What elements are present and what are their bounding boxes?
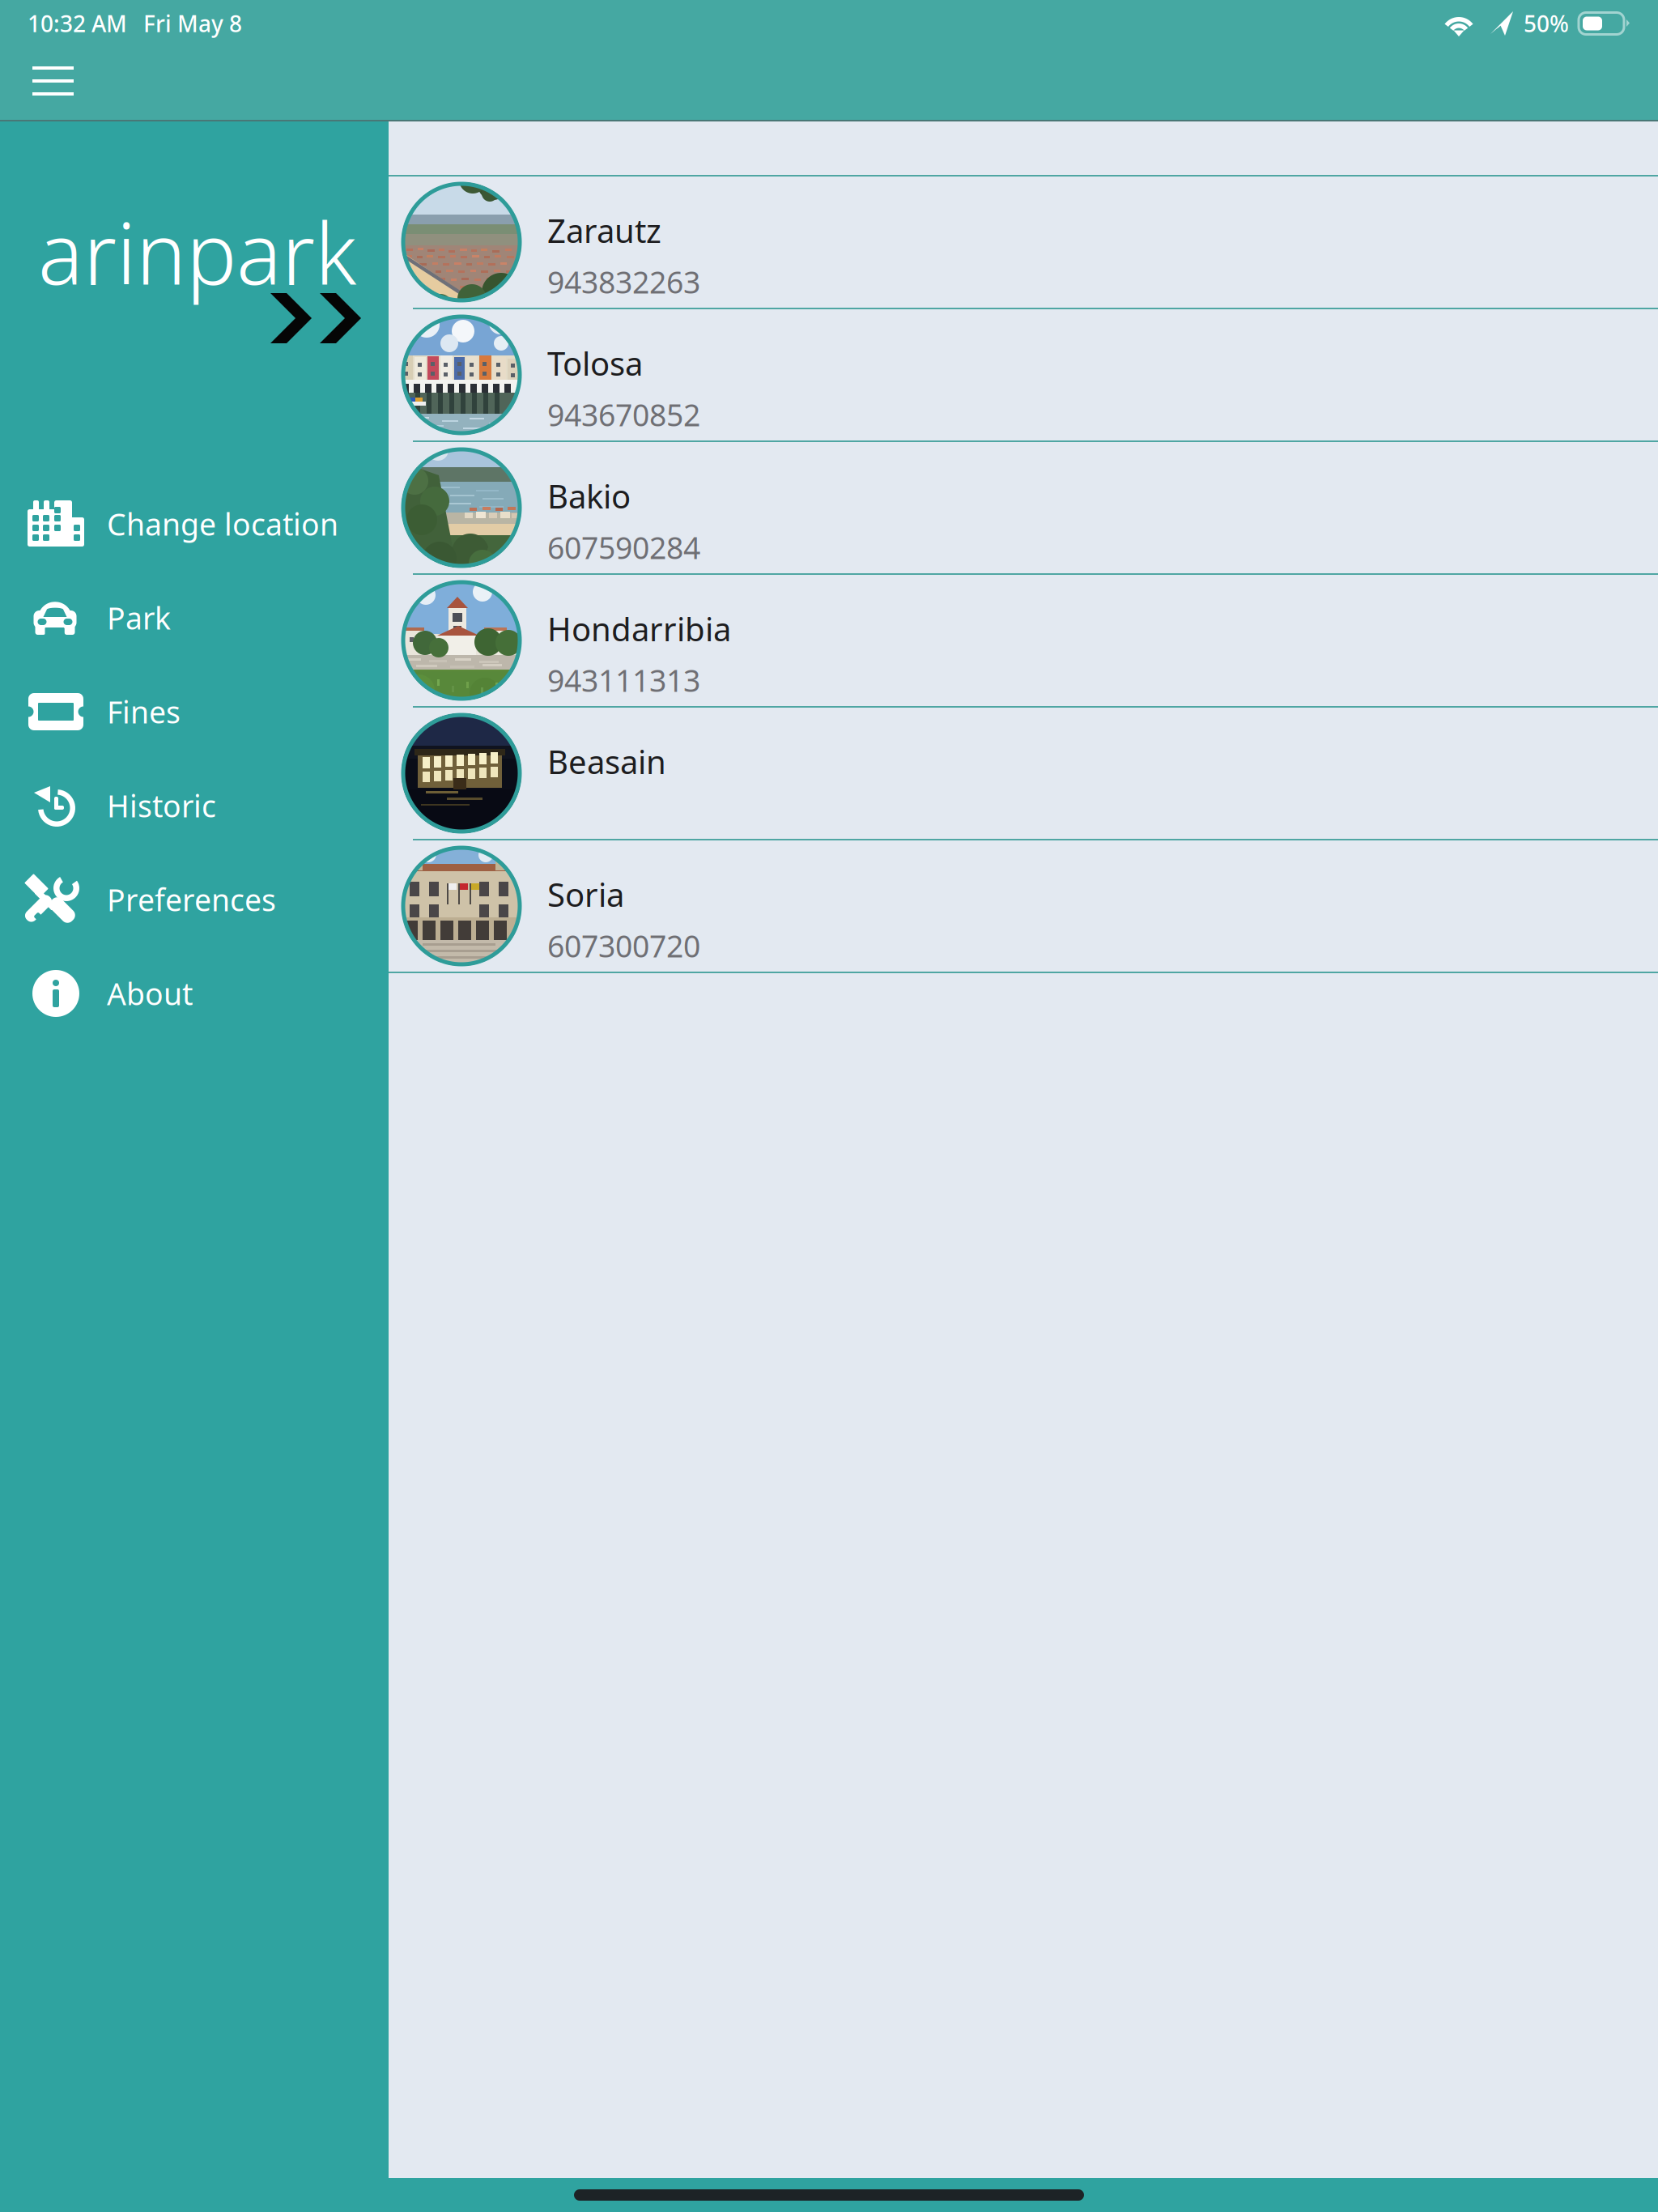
staticText: 943111313 (547, 660, 700, 700)
staticText: Park (107, 598, 171, 638)
button[interactable]: Fines (0, 665, 389, 759)
button[interactable]: Soria (389, 840, 1658, 973)
staticText: Soria (547, 873, 624, 916)
staticText: Fines (107, 692, 181, 732)
staticText: Preferences (107, 879, 276, 920)
staticText: arinpark (38, 196, 356, 308)
button[interactable]: About (0, 946, 389, 1040)
button[interactable]: Beasain (389, 708, 1658, 840)
staticText: 943670852 (547, 394, 700, 435)
button[interactable]: Change location (0, 477, 389, 571)
staticText: Beasain (547, 740, 666, 783)
button[interactable]: Park (0, 571, 389, 665)
staticText: Fri May 8 (143, 8, 242, 39)
button[interactable]: Zarautz (389, 177, 1658, 309)
staticText: Tolosa (547, 342, 643, 385)
staticText: About (107, 973, 193, 1014)
staticText: Historic (107, 786, 216, 826)
button[interactable]: Historic (0, 759, 389, 853)
button[interactable]: Menu (0, 47, 138, 115)
staticText: Zarautz (547, 209, 661, 252)
staticText: 50% (1524, 8, 1569, 39)
button[interactable]: Preferences (0, 853, 389, 946)
staticText: 10:32 AM (28, 8, 127, 39)
staticText: Bakio (547, 474, 631, 517)
staticText: 943832263 (547, 262, 700, 302)
staticText: 607590284 (547, 527, 700, 567)
button[interactable]: Tolosa (389, 309, 1658, 442)
button[interactable]: Hondarribia (389, 575, 1658, 708)
button[interactable]: Bakio (389, 442, 1658, 575)
staticText: 607300720 (547, 926, 700, 966)
staticText: Hondarribia (547, 607, 731, 650)
staticText: Change location (107, 504, 338, 544)
